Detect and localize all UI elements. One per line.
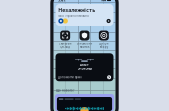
staticText: Допомогти армії — [58, 75, 82, 79]
staticText: збору — [100, 45, 108, 49]
staticText: Незалежність — [58, 6, 95, 13]
staticText: OF DRONES — [77, 67, 91, 70]
button[interactable]: Незалежність — [55, 4, 113, 26]
staticText: Що нового? — [56, 89, 74, 92]
staticText: Сканувати — [59, 42, 72, 45]
staticText: квиток — [80, 45, 89, 49]
button[interactable] — [57, 97, 112, 111]
staticText: Центри — [99, 42, 109, 45]
button[interactable]: ARMY — [55, 53, 113, 81]
staticText: QR-код — [60, 45, 70, 49]
button[interactable]: Сканувати — [55, 30, 75, 49]
staticText: 9:41 — [58, 0, 65, 3]
staticText: Моя Україна незламна — [58, 14, 88, 18]
button[interactable]: Військовий — [75, 30, 94, 49]
button[interactable]: Центри — [94, 30, 113, 49]
staticText: ARMY — [80, 63, 89, 67]
staticText: Військовий — [76, 42, 92, 45]
